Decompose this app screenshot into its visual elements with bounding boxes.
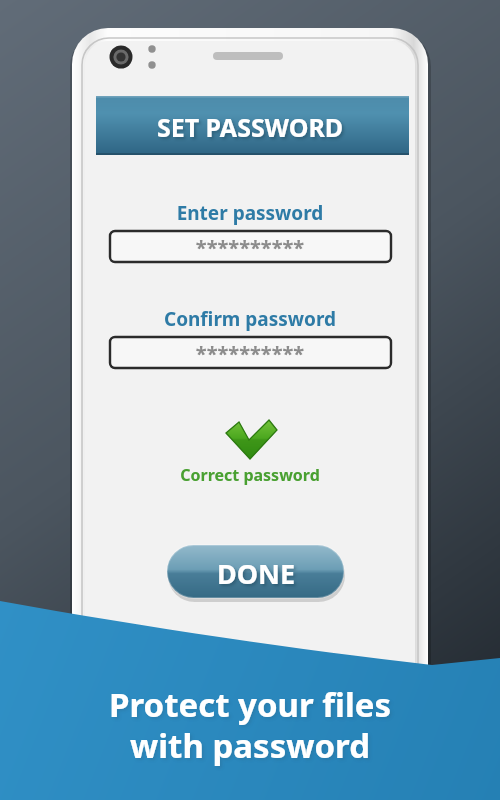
- staticText: Protect your files: [30, 682, 470, 735]
- button[interactable]: Enter password field: [110, 231, 391, 262]
- staticText: **********: [30, 340, 470, 372]
- staticText: Confirm password: [30, 306, 470, 336]
- button[interactable]: [167, 545, 344, 598]
- staticText: with password: [30, 723, 470, 776]
- button[interactable]: Confirm password field: [110, 337, 391, 368]
- staticText: SET PASSWORD: [30, 110, 470, 150]
- staticText: Enter password: [30, 200, 470, 230]
- staticText: Correct password: [30, 464, 470, 490]
- staticText: DONE: [36, 555, 476, 598]
- staticText: **********: [30, 234, 470, 266]
